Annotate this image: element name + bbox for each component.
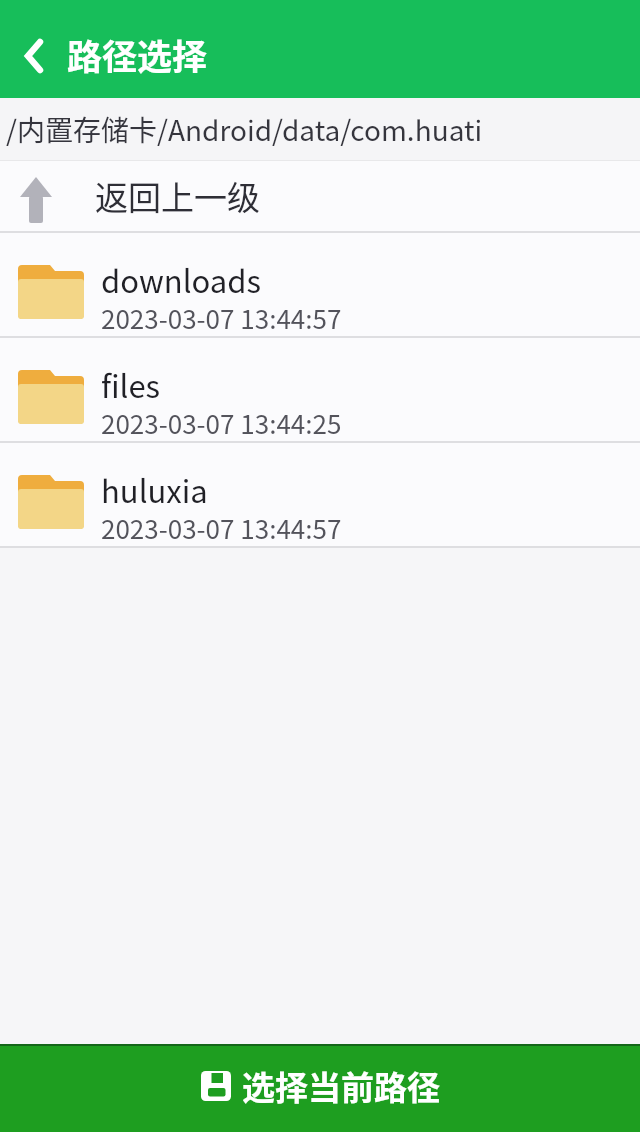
button[interactable]: downloads <box>0 233 640 336</box>
staticText: huluxia <box>101 467 208 512</box>
staticText: 2023-03-07 13:44:57 <box>101 509 342 547</box>
staticText: downloads <box>101 257 261 302</box>
button[interactable]: 选择当前路径 <box>0 1044 640 1132</box>
staticText: 2023-03-07 13:44:57 <box>101 299 342 337</box>
button[interactable]: files <box>0 338 640 441</box>
staticText: 选择当前路径 <box>242 1062 440 1110</box>
staticText: 2023-03-07 13:44:25 <box>101 404 342 442</box>
staticText: 返回上一级 <box>95 172 260 220</box>
button[interactable] <box>0 24 64 98</box>
button[interactable]: 返回上一级 <box>0 161 640 231</box>
button[interactable]: huluxia <box>0 443 640 546</box>
staticText: /内置存储卡/Android/data/com.huati <box>6 109 483 150</box>
staticText: files <box>101 362 161 407</box>
staticText: 路径选择 <box>67 29 208 80</box>
